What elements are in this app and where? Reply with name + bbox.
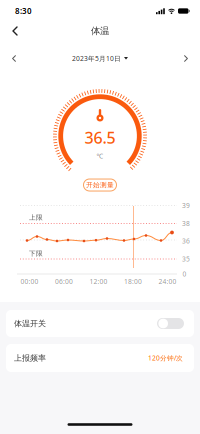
staticText: 体温开关 bbox=[14, 319, 46, 328]
button[interactable]: Next day bbox=[178, 52, 194, 64]
staticText: ℃ bbox=[96, 152, 103, 160]
button[interactable]: 体温开关 bbox=[157, 318, 184, 329]
staticText: 18:00 bbox=[124, 277, 142, 286]
staticText: 00:00 bbox=[20, 277, 38, 286]
staticText: 上限 bbox=[29, 213, 43, 222]
staticText: 39 bbox=[182, 201, 190, 210]
staticText: 12:00 bbox=[89, 277, 107, 286]
button[interactable]: 2023年5月10日 bbox=[72, 54, 128, 63]
staticText: 下限 bbox=[29, 249, 43, 258]
staticText: 35 bbox=[182, 255, 190, 263]
staticText: 36 bbox=[182, 237, 190, 245]
staticText: 06:00 bbox=[55, 277, 73, 286]
button[interactable]: Previous day bbox=[6, 52, 22, 64]
staticText: 8:30 bbox=[15, 6, 32, 16]
staticText: 36.5 bbox=[84, 127, 115, 148]
staticText: 2023年5月10日 bbox=[72, 54, 121, 63]
staticText: 120分钟/次 bbox=[148, 354, 183, 362]
staticText: 开始测量 bbox=[86, 181, 114, 189]
staticText: 38 bbox=[182, 219, 190, 228]
staticText: 上报频率 bbox=[14, 353, 46, 363]
button[interactable]: 开始测量 bbox=[83, 178, 117, 191]
staticText: 24:00 bbox=[158, 277, 176, 286]
button[interactable]: 上报频率 bbox=[6, 344, 194, 372]
staticText: 体温 bbox=[91, 25, 109, 37]
staticText: 0 bbox=[182, 270, 186, 278]
button[interactable]: Back bbox=[5, 23, 25, 39]
